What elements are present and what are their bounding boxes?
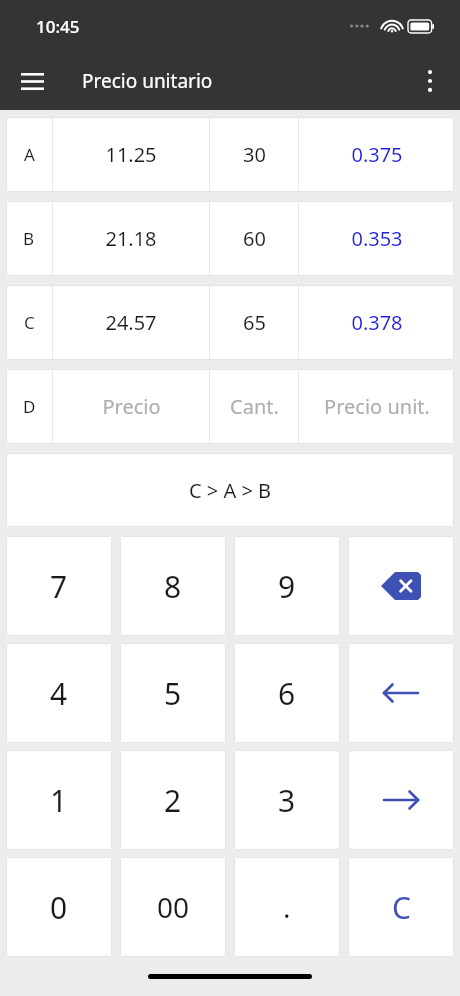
- staticText: A: [24, 143, 35, 166]
- button[interactable]: Move left: [348, 643, 454, 743]
- staticText: 8: [164, 566, 182, 607]
- button[interactable]: 8: [120, 536, 226, 636]
- staticText: C > A > B: [189, 477, 272, 504]
- button[interactable]: 3: [234, 750, 340, 850]
- staticText: 1: [50, 780, 68, 821]
- staticText: B: [23, 227, 35, 250]
- staticText: 00: [157, 888, 190, 926]
- button[interactable]: Open navigation menu: [10, 59, 54, 103]
- staticText: 0: [50, 887, 68, 928]
- staticText: 2: [164, 780, 182, 821]
- staticText: Precio: [102, 393, 161, 420]
- staticText: 24.57: [105, 309, 157, 336]
- staticText: .: [283, 888, 291, 926]
- button[interactable]: .: [234, 857, 340, 957]
- staticText: 9: [278, 566, 296, 607]
- staticText: 30: [243, 141, 266, 168]
- button[interactable]: B: [6, 201, 454, 276]
- button[interactable]: 1: [6, 750, 112, 850]
- staticText: 7: [50, 566, 68, 607]
- button[interactable]: 4: [6, 643, 112, 743]
- staticText: C: [392, 887, 411, 928]
- staticText: 0.353: [351, 225, 403, 252]
- button[interactable]: Move right: [348, 750, 454, 850]
- button[interactable]: 5: [120, 643, 226, 743]
- button[interactable]: Backspace: [348, 536, 454, 636]
- button[interactable]: C: [6, 285, 454, 360]
- button[interactable]: C > A > B: [6, 453, 454, 527]
- button[interactable]: 00: [120, 857, 226, 957]
- staticText: Precio unitario: [82, 68, 213, 94]
- staticText: 0.378: [351, 309, 403, 336]
- button[interactable]: D: [6, 369, 454, 444]
- staticText: 10:45: [36, 15, 80, 38]
- staticText: Cant.: [230, 393, 279, 420]
- button[interactable]: A: [6, 117, 454, 192]
- button[interactable]: 9: [234, 536, 340, 636]
- button[interactable]: 0: [6, 857, 112, 957]
- staticText: 3: [278, 780, 296, 821]
- staticText: 11.25: [105, 141, 157, 168]
- staticText: 6: [278, 673, 296, 714]
- staticText: 0.375: [351, 141, 403, 168]
- staticText: D: [23, 395, 36, 418]
- staticText: 60: [243, 225, 266, 252]
- button[interactable]: More options: [408, 59, 452, 103]
- staticText: 4: [50, 673, 68, 714]
- staticText: Precio unit.: [324, 393, 430, 420]
- button[interactable]: 2: [120, 750, 226, 850]
- staticText: 65: [243, 309, 266, 336]
- button[interactable]: 6: [234, 643, 340, 743]
- button[interactable]: 7: [6, 536, 112, 636]
- staticText: C: [24, 311, 35, 334]
- button[interactable]: C: [348, 857, 454, 957]
- staticText: 5: [164, 673, 182, 714]
- staticText: 21.18: [105, 225, 157, 252]
